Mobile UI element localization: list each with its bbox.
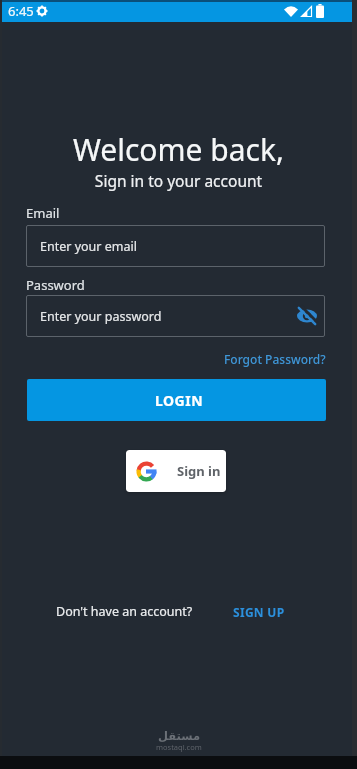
staticText: Welcome back,	[0, 129, 357, 170]
staticText: 6:45	[8, 2, 34, 20]
button[interactable]: LOGIN	[27, 379, 326, 421]
button[interactable]: Enter your email	[26, 225, 325, 267]
staticText: Enter your password	[40, 308, 162, 325]
button[interactable]: Forgot Password?	[224, 351, 326, 367]
button[interactable]: SIGN UP	[233, 604, 285, 620]
staticText: مستقل	[158, 729, 201, 742]
staticText: Enter your email	[40, 238, 137, 255]
button[interactable]	[293, 302, 321, 330]
button[interactable]: Sign in	[126, 450, 226, 492]
staticText: Password	[26, 276, 85, 294]
button[interactable]: Enter your password	[26, 295, 325, 337]
staticText: Don't have an account?	[56, 603, 193, 620]
staticText: Sign in	[177, 462, 221, 480]
staticText: mostaql.com	[156, 742, 202, 752]
staticText: Sign in to your account	[0, 170, 357, 191]
staticText: Email	[26, 204, 60, 222]
staticText: LOGIN	[155, 391, 204, 410]
